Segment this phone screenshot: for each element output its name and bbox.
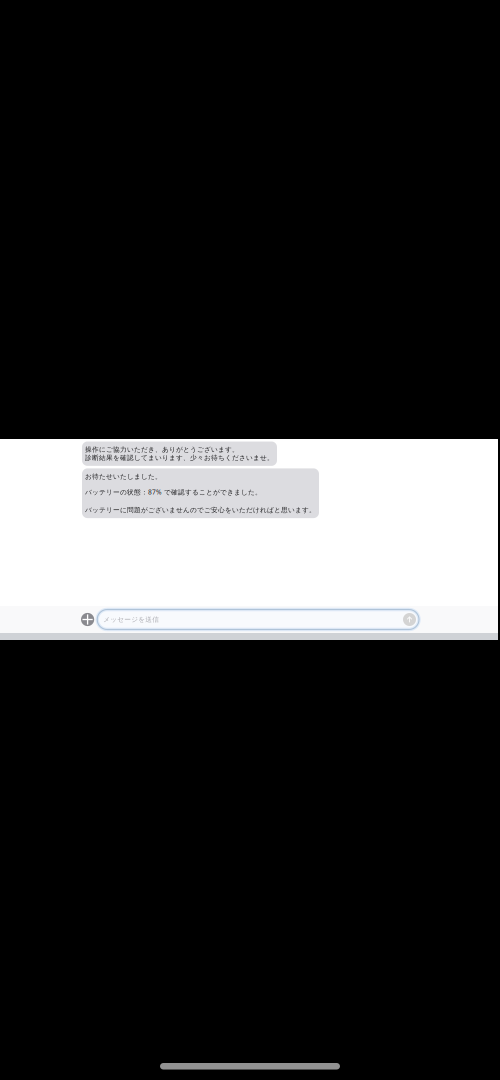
staticText: バッテリーの状態：87% で確認することができました。 <box>85 488 262 496</box>
staticText: 診断結果を確認してまいります、少々お待ちくださいませ。 <box>85 454 274 462</box>
button[interactable]: 送信 <box>403 613 416 626</box>
staticText: バッテリーに問題がございませんのでご安心をいただければと思います。 <box>85 506 316 514</box>
staticText: 操作にご協力いただき、ありがとうございます。 <box>85 445 239 454</box>
staticText: メッセージを送信 <box>103 615 159 624</box>
button[interactable]: 添付ファイルを追加 <box>81 613 94 626</box>
staticText: お待たせいたしました。 <box>85 472 162 481</box>
